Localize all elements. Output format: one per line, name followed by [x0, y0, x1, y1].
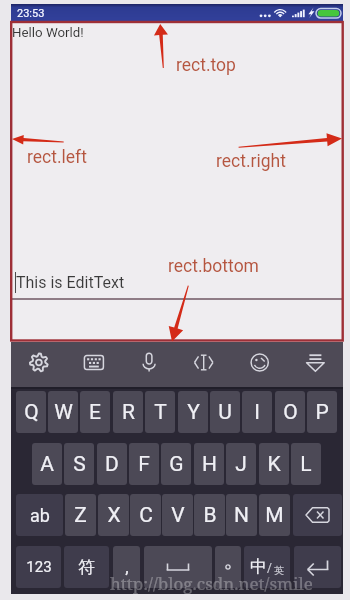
button[interactable]: E	[80, 391, 110, 433]
staticText: Q	[24, 400, 39, 425]
button[interactable]: 中	[244, 546, 290, 588]
button[interactable]: Move cursor	[177, 342, 232, 387]
button[interactable]: D	[97, 443, 127, 485]
staticText: B	[203, 503, 217, 528]
staticText: X	[107, 503, 121, 528]
staticText: A	[40, 452, 54, 477]
button[interactable]: A	[32, 443, 62, 485]
staticText: E	[89, 400, 101, 425]
staticText: rect.bottom	[168, 256, 259, 277]
button[interactable]: C	[130, 494, 161, 536]
button[interactable]: T	[145, 391, 175, 433]
button[interactable]: I	[242, 391, 272, 433]
staticText: C	[139, 503, 153, 528]
staticText: 23:53	[17, 7, 45, 20]
staticText: 英	[274, 564, 284, 577]
staticText: D	[105, 452, 119, 477]
button[interactable]: W	[48, 391, 78, 433]
button[interactable]: R	[113, 391, 143, 433]
button[interactable]: ab	[16, 494, 63, 536]
staticText: ,	[125, 557, 129, 577]
staticText: This is EditText	[16, 273, 125, 292]
staticText: F	[138, 452, 150, 477]
staticText: P	[315, 400, 329, 425]
staticText: 符	[78, 557, 95, 578]
staticText: S	[73, 452, 86, 477]
staticText: H	[202, 452, 217, 477]
staticText: V	[171, 503, 185, 528]
staticText: K	[267, 452, 281, 477]
button[interactable]: N	[226, 494, 257, 536]
button[interactable]: V	[162, 494, 193, 536]
button[interactable]: Enter	[294, 546, 341, 588]
staticText: I	[254, 400, 260, 425]
button[interactable]: G	[161, 443, 191, 485]
staticText: 123	[26, 558, 52, 576]
staticText: Y	[187, 400, 200, 425]
button[interactable]: H	[194, 443, 224, 485]
staticText: /	[267, 561, 272, 575]
button[interactable]: Voice input	[122, 342, 177, 387]
staticText: Hello World!	[12, 25, 84, 41]
button[interactable]: O	[275, 391, 305, 433]
staticText: T	[154, 400, 167, 425]
button[interactable]: Hide keyboard	[288, 342, 343, 387]
staticText: U	[218, 400, 232, 425]
staticText: O	[283, 400, 298, 425]
staticText: rect.top	[176, 55, 236, 76]
button[interactable]: M	[259, 494, 290, 536]
button[interactable]: ,	[113, 546, 140, 588]
button[interactable]: J	[226, 443, 256, 485]
button[interactable]: B	[194, 494, 225, 536]
button[interactable]: Space	[144, 546, 212, 588]
staticText: W	[54, 400, 73, 425]
button[interactable]: 符	[64, 546, 109, 588]
staticText: J	[235, 452, 247, 477]
button[interactable]: Backspace	[293, 494, 342, 536]
button[interactable]: Keyboard layout	[66, 342, 121, 387]
button[interactable]: Z	[65, 494, 96, 536]
button[interactable]: S	[64, 443, 94, 485]
staticText: Z	[74, 503, 87, 528]
button[interactable]: Settings	[11, 342, 66, 387]
button[interactable]: P	[307, 391, 337, 433]
staticText: rect.right	[216, 151, 286, 172]
staticText: N	[234, 503, 249, 528]
button[interactable]: L	[291, 443, 321, 485]
button[interactable]: F	[129, 443, 159, 485]
button[interactable]: Y	[178, 391, 208, 433]
staticText: http://blog.csdn.net/smile	[110, 572, 313, 595]
staticText: M	[265, 503, 284, 528]
staticText: 中	[250, 556, 267, 577]
staticText: rect.left	[27, 147, 87, 168]
button[interactable]: Emoji	[232, 342, 287, 387]
button[interactable]: 123	[16, 546, 61, 588]
staticText: ab	[30, 505, 50, 526]
button[interactable]: X	[98, 494, 129, 536]
button[interactable]: Period	[215, 546, 241, 588]
staticText: R	[122, 400, 135, 425]
button[interactable]: K	[259, 443, 289, 485]
staticText: L	[300, 452, 312, 477]
button[interactable]: Q	[16, 391, 46, 433]
button[interactable]: U	[210, 391, 240, 433]
staticText: G	[169, 452, 184, 477]
